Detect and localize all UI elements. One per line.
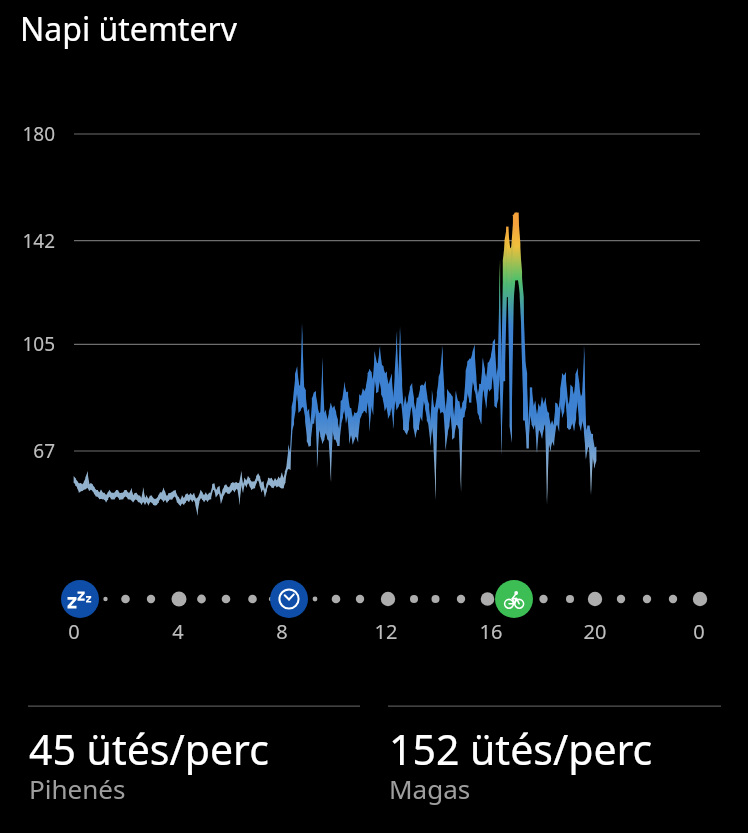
button[interactable]: Kerékpározás — [495, 580, 533, 618]
staticText: 8 — [257, 618, 307, 644]
staticText: 20 — [570, 618, 620, 644]
staticText: 152 ütés/perc — [389, 721, 653, 777]
staticText: 67 — [0, 438, 55, 464]
button[interactable]: 152 ütés/perc — [388, 700, 721, 820]
staticText: 4 — [153, 618, 203, 644]
staticText: 0 — [49, 618, 99, 644]
staticText: 12 — [361, 618, 411, 644]
staticText: Napi ütemterv — [20, 7, 237, 51]
staticText: 180 — [0, 121, 55, 147]
staticText: Pihenés — [29, 771, 126, 806]
staticText: 0 — [674, 618, 724, 644]
staticText: 45 ütés/perc — [29, 721, 269, 777]
staticText: Magas — [389, 771, 471, 806]
staticText: 16 — [466, 618, 516, 644]
staticText: 105 — [0, 331, 55, 357]
button[interactable]: 45 ütés/perc — [28, 700, 360, 820]
staticText: 142 — [0, 228, 55, 254]
button[interactable]: Ébredés — [270, 580, 308, 618]
button[interactable]: Alvás — [61, 580, 99, 618]
